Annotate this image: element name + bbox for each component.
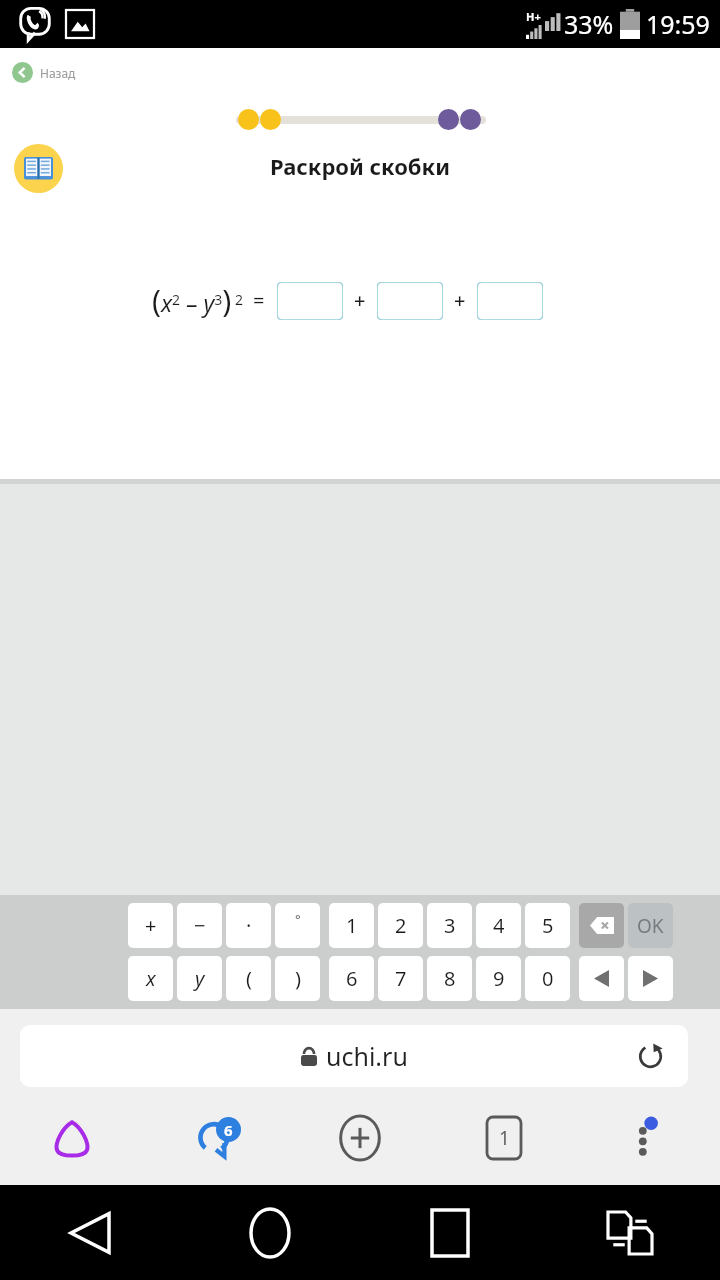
staticText: Раскрой скобки xyxy=(0,151,720,181)
button[interactable]: Назад xyxy=(55,1198,125,1268)
button[interactable]: + xyxy=(128,903,173,948)
staticText: uchi.ru xyxy=(326,1039,408,1073)
staticText: ° xyxy=(295,910,301,928)
staticText: = xyxy=(253,287,265,314)
staticText: ) xyxy=(295,965,301,992)
button[interactable]: Учебник xyxy=(14,144,63,193)
staticText: 4 xyxy=(493,912,505,939)
button[interactable]: Назад xyxy=(10,60,78,85)
button[interactable]: 3 xyxy=(427,903,472,948)
button[interactable]: ( xyxy=(226,956,271,1001)
staticText: 1 xyxy=(346,912,358,939)
button[interactable]: y xyxy=(177,956,222,1001)
button[interactable]: uchi.ru xyxy=(20,1025,688,1087)
staticText: 1 xyxy=(499,1125,510,1151)
button[interactable]: 9 xyxy=(476,956,521,1001)
staticText: 3 xyxy=(444,912,456,939)
staticText: 2 xyxy=(395,912,407,939)
button[interactable]: 8 xyxy=(427,956,472,1001)
button[interactable]: Обновить xyxy=(630,1036,670,1076)
staticText: ( xyxy=(246,965,252,992)
button[interactable]: Поле ответа xyxy=(477,282,543,320)
staticText: 8 xyxy=(444,965,456,992)
button[interactable]: Стереть xyxy=(579,903,624,948)
staticText: 5 xyxy=(542,912,554,939)
button[interactable]: Уведомления: 6 xyxy=(187,1109,245,1167)
button[interactable]: 6 xyxy=(329,956,374,1001)
staticText: + xyxy=(454,287,466,314)
button[interactable]: Главный экран xyxy=(235,1198,305,1268)
button[interactable]: 5 xyxy=(525,903,570,948)
button[interactable]: Новая вкладка xyxy=(331,1109,389,1167)
button[interactable]: OK xyxy=(628,903,673,948)
button[interactable]: 4 xyxy=(476,903,521,948)
button[interactable]: Поле ответа xyxy=(277,282,343,320)
staticText: · xyxy=(246,912,252,939)
button[interactable]: − xyxy=(177,903,222,948)
staticText: + xyxy=(145,912,157,939)
button[interactable]: ° xyxy=(275,903,320,948)
button[interactable]: 0 xyxy=(525,956,570,1001)
staticText: 0 xyxy=(542,965,554,992)
staticText: 6 xyxy=(346,965,358,992)
staticText: Назад xyxy=(40,65,76,81)
staticText: − xyxy=(194,912,206,939)
staticText: 33% xyxy=(564,7,614,41)
button[interactable]: ) xyxy=(275,956,320,1001)
button[interactable]: Поле ответа xyxy=(377,282,443,320)
button[interactable]: Главная xyxy=(43,1109,101,1167)
staticText: x xyxy=(146,965,156,992)
button[interactable]: Обзор приложений xyxy=(415,1198,485,1268)
staticText: OK xyxy=(637,913,664,939)
staticText: 6 xyxy=(224,1120,233,1140)
button[interactable]: Влево xyxy=(579,956,624,1001)
button[interactable]: Вкладки: 1 xyxy=(475,1109,533,1167)
button[interactable]: Переключить приложение xyxy=(595,1198,665,1268)
staticText: 7 xyxy=(395,965,407,992)
staticText: + xyxy=(354,287,366,314)
button[interactable]: Меню xyxy=(619,1109,677,1167)
button[interactable]: 1 xyxy=(329,903,374,948)
button[interactable]: · xyxy=(226,903,271,948)
staticText: H+ xyxy=(526,9,541,24)
button[interactable]: 7 xyxy=(378,956,423,1001)
staticText: y xyxy=(195,965,205,992)
staticText: 9 xyxy=(493,965,505,992)
button[interactable]: x xyxy=(128,956,173,1001)
button[interactable]: 2 xyxy=(378,903,423,948)
button[interactable]: Вправо xyxy=(628,956,673,1001)
staticText: (x2 – y3) 2 xyxy=(152,280,243,321)
staticText: 19:59 xyxy=(646,7,710,41)
